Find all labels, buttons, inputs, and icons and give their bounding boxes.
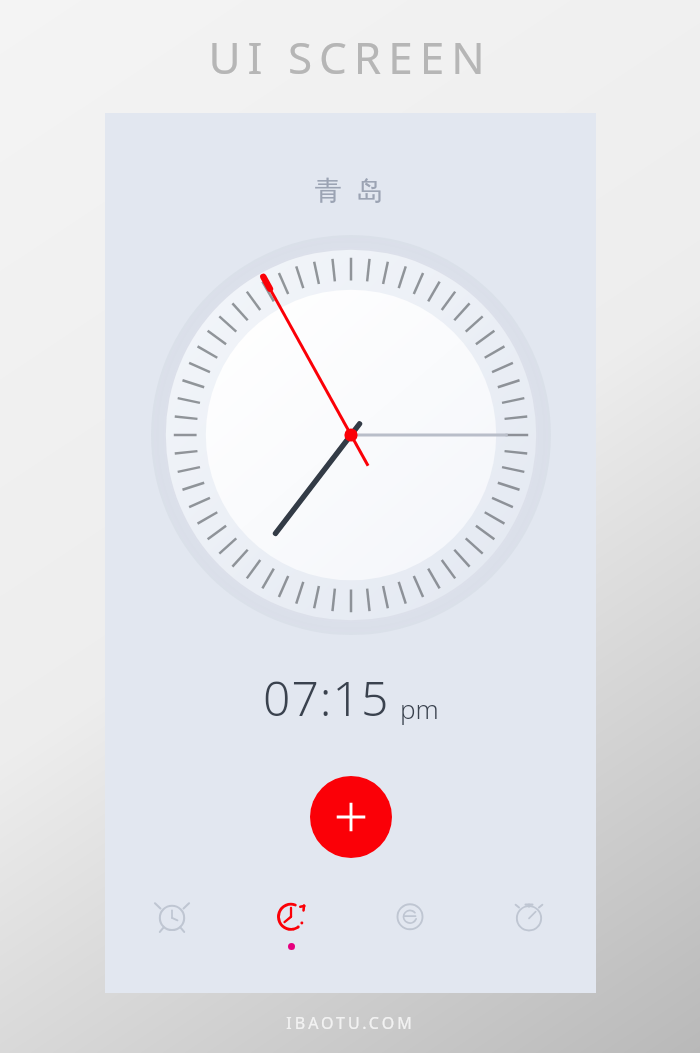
staticText: 青 岛 (314, 171, 388, 208)
button[interactable]: Alarm (120, 891, 224, 963)
staticText: 07:15 (263, 665, 390, 730)
button[interactable]: Add alarm (310, 776, 392, 858)
staticText: IBAOTU.COM (286, 1012, 415, 1034)
staticText: pm (400, 691, 439, 726)
button[interactable]: Clock (358, 891, 462, 963)
button[interactable]: Stopwatch (477, 891, 581, 963)
staticText: UI SCREEN (208, 27, 492, 87)
button[interactable]: Timer (239, 891, 343, 963)
